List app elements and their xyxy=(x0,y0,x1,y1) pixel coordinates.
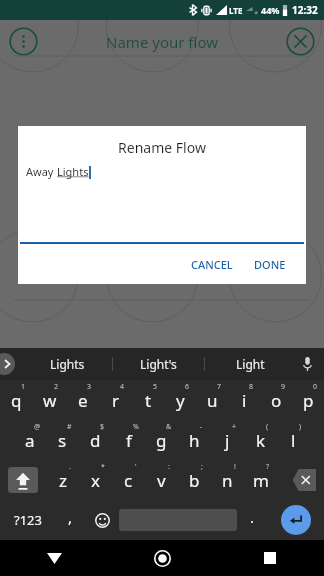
staticText: Name your flow xyxy=(106,32,218,52)
staticText: : xyxy=(168,462,170,472)
button[interactable]: t xyxy=(132,380,164,420)
button[interactable]: k xyxy=(244,420,277,460)
button[interactable]: y xyxy=(164,380,196,420)
button[interactable]: More options xyxy=(9,27,38,56)
button[interactable]: s xyxy=(46,420,79,460)
button[interactable]: o xyxy=(260,380,292,420)
button[interactable]: g xyxy=(145,420,178,460)
button[interactable]: Home xyxy=(108,540,216,576)
staticText: 44% xyxy=(261,4,280,16)
staticText: ; xyxy=(201,462,203,472)
staticText: . xyxy=(69,462,71,472)
staticText: * xyxy=(101,462,105,472)
staticText: p xyxy=(303,389,314,412)
button[interactable]: DONE xyxy=(248,251,292,278)
staticText: ( xyxy=(266,422,269,432)
staticText: s xyxy=(58,429,67,452)
staticText: 0 xyxy=(313,382,318,392)
button[interactable]: d xyxy=(79,420,112,460)
button[interactable]: j xyxy=(211,420,244,460)
staticText: Light xyxy=(236,356,265,372)
staticText: r xyxy=(112,389,120,412)
button[interactable]: Lights xyxy=(22,348,112,380)
staticText: ? xyxy=(266,462,270,472)
staticText: k xyxy=(256,429,266,452)
button[interactable]: Backspace xyxy=(277,460,324,500)
staticText: Away xyxy=(26,164,57,179)
button[interactable]: n xyxy=(211,460,244,500)
button[interactable]: r xyxy=(99,380,132,420)
staticText: ' xyxy=(135,462,137,472)
button[interactable]: e xyxy=(66,380,99,420)
staticText: 4 xyxy=(120,382,125,392)
button[interactable]: w xyxy=(33,380,66,420)
button[interactable]: ?123 xyxy=(0,500,55,540)
button[interactable]: Light's xyxy=(113,348,204,380)
button[interactable]: . xyxy=(237,500,267,540)
staticText: & xyxy=(166,422,172,432)
staticText: DONE xyxy=(254,257,286,272)
button[interactable]: , xyxy=(55,500,85,540)
button[interactable]: Close xyxy=(286,27,315,56)
button[interactable]: m xyxy=(244,460,277,500)
staticText: c xyxy=(124,469,133,492)
staticText: a xyxy=(25,429,35,452)
staticText: u xyxy=(207,389,218,412)
staticText: j xyxy=(225,429,230,452)
button[interactable]: q xyxy=(0,380,33,420)
button[interactable]: Back xyxy=(0,540,108,576)
button[interactable]: More suggestions xyxy=(0,353,15,375)
staticText: l xyxy=(291,429,296,452)
staticText: h xyxy=(189,429,200,452)
button[interactable]: b xyxy=(178,460,211,500)
button[interactable]: x xyxy=(79,460,112,500)
staticText: CANCEL xyxy=(191,257,233,272)
staticText: Lights xyxy=(50,356,85,372)
staticText: i xyxy=(242,389,247,412)
staticText: x xyxy=(91,469,100,492)
staticText: 8 xyxy=(249,382,254,392)
staticText: v xyxy=(157,469,166,492)
button[interactable]: Emoji xyxy=(85,500,119,540)
staticText: , xyxy=(68,507,73,527)
button[interactable]: h xyxy=(178,420,211,460)
staticText: d xyxy=(90,429,101,452)
staticText: 12:32 xyxy=(292,3,318,17)
staticText: $ xyxy=(100,422,105,432)
staticText: ! xyxy=(234,462,236,472)
button[interactable]: Shift xyxy=(0,460,46,500)
staticText: b xyxy=(189,469,200,492)
button[interactable]: a xyxy=(14,420,46,460)
button[interactable]: i xyxy=(228,380,260,420)
button[interactable]: c xyxy=(112,460,145,500)
button[interactable]: Recent apps xyxy=(216,540,324,576)
button[interactable]: CANCEL xyxy=(185,251,239,278)
staticText: ) xyxy=(299,422,302,432)
staticText: q xyxy=(11,389,22,412)
staticText: f xyxy=(126,429,132,452)
button[interactable]: v xyxy=(145,460,178,500)
staticText: Lights xyxy=(57,164,89,179)
staticText: 2 xyxy=(54,382,59,392)
staticText: ?123 xyxy=(14,511,42,529)
staticText: z xyxy=(59,469,67,492)
staticText: 7 xyxy=(217,382,222,392)
staticText: 3 xyxy=(87,382,92,392)
button[interactable]: Voice input xyxy=(296,353,318,375)
button[interactable]: f xyxy=(112,420,145,460)
staticText: m xyxy=(253,469,269,492)
button[interactable]: Enter xyxy=(267,500,324,540)
button[interactable]: z xyxy=(46,460,79,500)
staticText: 9 xyxy=(281,382,286,392)
staticText: y xyxy=(176,389,185,412)
staticText: o xyxy=(271,389,282,412)
staticText: n xyxy=(222,469,233,492)
button[interactable]: Light xyxy=(205,348,296,380)
button[interactable]: p xyxy=(292,380,324,420)
staticText: g xyxy=(156,429,167,452)
button[interactable]: l xyxy=(277,420,310,460)
staticText: 6 xyxy=(185,382,190,392)
staticText: % xyxy=(133,422,139,432)
button[interactable]: u xyxy=(196,380,228,420)
